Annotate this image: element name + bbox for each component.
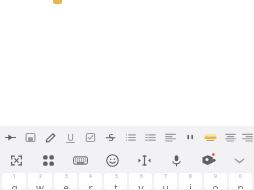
staticText: 4 — [89, 173, 92, 180]
staticText: 6 — [140, 173, 143, 180]
staticText: r — [88, 181, 93, 189]
button[interactable]: Keyboard — [64, 148, 96, 172]
button[interactable]: 1 — [2, 173, 26, 189]
button[interactable]: Strikethrough — [100, 126, 120, 148]
staticText: p — [237, 181, 244, 189]
staticText: 0 — [239, 173, 242, 180]
button[interactable]: 3 — [54, 173, 77, 189]
button[interactable]: Indent — [160, 126, 180, 148]
staticText: e — [63, 181, 69, 189]
button[interactable]: 0 — [229, 173, 252, 189]
button[interactable]: Hide keyboard — [224, 148, 254, 172]
button[interactable]: 9 — [204, 173, 227, 189]
button[interactable]: 5 — [104, 173, 127, 189]
staticText: w — [36, 181, 44, 189]
button[interactable]: Emoji — [96, 148, 128, 172]
button[interactable]: Insert image — [20, 126, 40, 148]
button[interactable]: Highlight — [200, 126, 220, 148]
staticText: y — [138, 181, 144, 189]
staticText: 3 — [65, 173, 68, 180]
button[interactable]: Voice input — [160, 148, 192, 172]
button[interactable]: Align center — [220, 126, 240, 148]
button[interactable]: 7 — [154, 173, 177, 189]
button[interactable]: Format painter — [0, 126, 20, 148]
staticText: 5 — [115, 173, 118, 180]
button[interactable]: 4 — [79, 173, 102, 189]
button[interactable]: Underline — [60, 126, 80, 148]
staticText: 1 — [13, 173, 16, 180]
staticText: S — [108, 131, 114, 144]
staticText: q — [11, 181, 18, 189]
button[interactable]: Align right — [240, 126, 254, 148]
button[interactable]: Numbered list — [140, 126, 160, 148]
staticText: u — [162, 181, 169, 189]
button[interactable]: Draw — [40, 126, 60, 148]
button[interactable]: Apps — [32, 148, 64, 172]
staticText: 9 — [214, 173, 217, 180]
staticText: t — [114, 181, 118, 189]
button[interactable]: 8 — [179, 173, 202, 189]
button[interactable]: Checklist — [80, 126, 100, 148]
staticText: 8 — [189, 173, 192, 180]
button[interactable]: Expand keyboard — [0, 148, 32, 172]
staticText: o — [212, 181, 219, 189]
staticText: i — [189, 181, 192, 189]
staticText: U — [67, 131, 74, 143]
button[interactable]: Text cursor — [128, 148, 160, 172]
button[interactable]: Stickers — [192, 148, 224, 172]
button[interactable]: 6 — [129, 173, 152, 189]
button[interactable]: Bulleted list — [120, 126, 140, 148]
button[interactable]: 2 — [28, 173, 52, 189]
staticText: 2 — [39, 173, 42, 180]
staticText: 7 — [164, 173, 167, 180]
button[interactable]: Quote — [180, 126, 200, 148]
